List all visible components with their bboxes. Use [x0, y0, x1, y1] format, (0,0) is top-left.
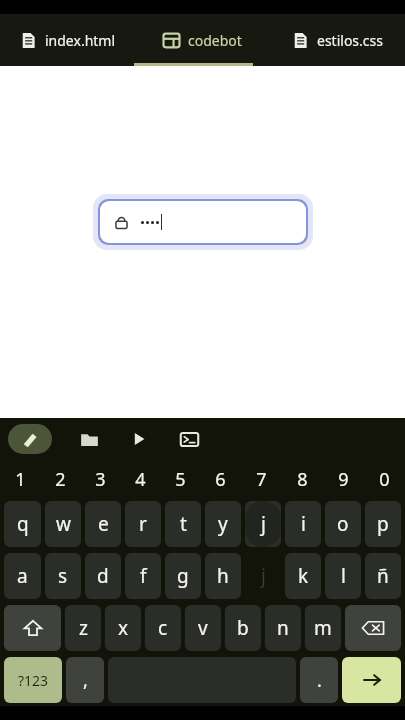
staticText: h: [217, 563, 229, 589]
staticText: j: [261, 563, 266, 589]
staticText: codebot: [188, 31, 242, 50]
button[interactable]: 3: [80, 460, 120, 498]
staticText: s: [58, 563, 68, 589]
button[interactable]: [205, 501, 241, 547]
staticText: b: [237, 615, 249, 641]
button[interactable]: [365, 501, 401, 547]
button[interactable]: x: [105, 605, 141, 651]
button[interactable]: b: [225, 605, 261, 651]
button[interactable]: 2: [40, 460, 80, 498]
button[interactable]: 5: [160, 460, 200, 498]
staticText: x: [118, 615, 129, 641]
staticText: d: [97, 563, 109, 589]
staticText: q: [17, 511, 29, 537]
button[interactable]: [245, 501, 281, 547]
button[interactable]: estilos.css: [270, 14, 405, 66]
staticText: estilos.css: [317, 31, 383, 50]
button[interactable]: z: [65, 605, 101, 651]
button[interactable]: [85, 553, 121, 599]
button[interactable]: Run: [122, 422, 156, 456]
staticText: f: [140, 563, 147, 589]
button[interactable]: 9: [323, 460, 364, 498]
staticText: p: [377, 511, 389, 537]
staticText: e: [98, 511, 109, 537]
button[interactable]: Files: [72, 422, 106, 456]
staticText: 8: [297, 467, 308, 492]
button[interactable]: Backspace: [345, 605, 401, 651]
staticText: ñ: [377, 563, 389, 589]
staticText: a: [17, 563, 28, 589]
button[interactable]: [325, 553, 361, 599]
button[interactable]: n: [265, 605, 301, 651]
button[interactable]: [125, 501, 161, 547]
staticText: k: [298, 563, 309, 589]
staticText: .: [317, 668, 322, 693]
button[interactable]: c: [145, 605, 181, 651]
button[interactable]: v: [185, 605, 221, 651]
staticText: t: [180, 511, 187, 537]
staticText: g: [177, 563, 189, 589]
button[interactable]: codebot: [135, 14, 270, 66]
button[interactable]: [205, 553, 241, 599]
staticText: 1: [15, 467, 26, 492]
staticText: 2: [55, 467, 66, 492]
button[interactable]: .: [300, 657, 338, 703]
staticText: l: [341, 563, 346, 589]
staticText: w: [56, 511, 71, 537]
staticText: c: [158, 615, 168, 641]
button[interactable]: ?123: [4, 657, 62, 703]
button[interactable]: [165, 501, 201, 547]
button[interactable]: index.html: [0, 14, 135, 66]
button[interactable]: m: [305, 605, 341, 651]
staticText: r: [139, 511, 147, 537]
button[interactable]: [365, 553, 401, 599]
button[interactable]: [85, 501, 121, 547]
button[interactable]: 1: [0, 460, 40, 498]
button[interactable]: Shift: [4, 605, 61, 651]
button[interactable]: [285, 553, 321, 599]
staticText: 4: [135, 467, 146, 492]
button[interactable]: [285, 501, 321, 547]
staticText: v: [198, 615, 208, 641]
button[interactable]: [325, 501, 361, 547]
staticText: o: [337, 511, 349, 537]
button[interactable]: 4: [120, 460, 160, 498]
staticText: j: [261, 511, 266, 537]
button[interactable]: [4, 553, 41, 599]
staticText: m: [314, 615, 332, 641]
staticText: index.html: [45, 31, 116, 50]
button[interactable]: [45, 501, 81, 547]
staticText: 6: [215, 467, 226, 492]
staticText: z: [79, 615, 88, 641]
button[interactable]: Enter: [342, 657, 401, 703]
button[interactable]: [125, 553, 161, 599]
button[interactable]: 6: [200, 460, 241, 498]
button[interactable]: 7: [241, 460, 282, 498]
button[interactable]: Edit: [8, 424, 52, 454]
staticText: 9: [338, 467, 349, 492]
button[interactable]: Terminal: [172, 422, 206, 456]
staticText: 7: [256, 467, 267, 492]
button[interactable]: ,: [66, 657, 104, 703]
button[interactable]: 0: [364, 460, 405, 498]
staticText: i: [301, 511, 306, 537]
button[interactable]: [4, 501, 41, 547]
staticText: ?123: [18, 671, 49, 690]
staticText: 5: [175, 467, 186, 492]
staticText: 3: [95, 467, 106, 492]
button[interactable]: 8: [282, 460, 323, 498]
staticText: n: [277, 615, 289, 641]
staticText: ,: [83, 668, 88, 693]
staticText: y: [218, 511, 228, 537]
button[interactable]: [100, 201, 306, 243]
button[interactable]: [165, 553, 201, 599]
button[interactable]: [45, 553, 81, 599]
staticText: 0: [379, 467, 390, 492]
